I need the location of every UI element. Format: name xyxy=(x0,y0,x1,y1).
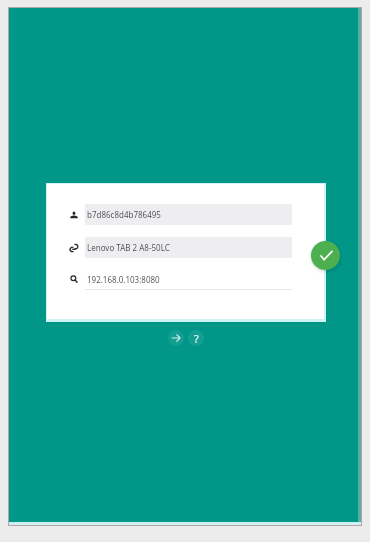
button[interactable]: Next xyxy=(168,330,184,346)
button[interactable]: User name field xyxy=(66,204,292,225)
staticText: ? xyxy=(194,331,199,346)
staticText: Lenovo TAB 2 A8-50LC xyxy=(87,242,170,253)
button[interactable]: Confirm xyxy=(311,241,340,270)
button[interactable]: Help xyxy=(188,330,204,346)
staticText: 192.168.0.103:8080 xyxy=(87,274,160,285)
button[interactable]: Device name field xyxy=(66,237,292,258)
button[interactable]: Server address field xyxy=(66,269,292,290)
staticText: b7d86c8d4b786495 xyxy=(87,209,161,220)
